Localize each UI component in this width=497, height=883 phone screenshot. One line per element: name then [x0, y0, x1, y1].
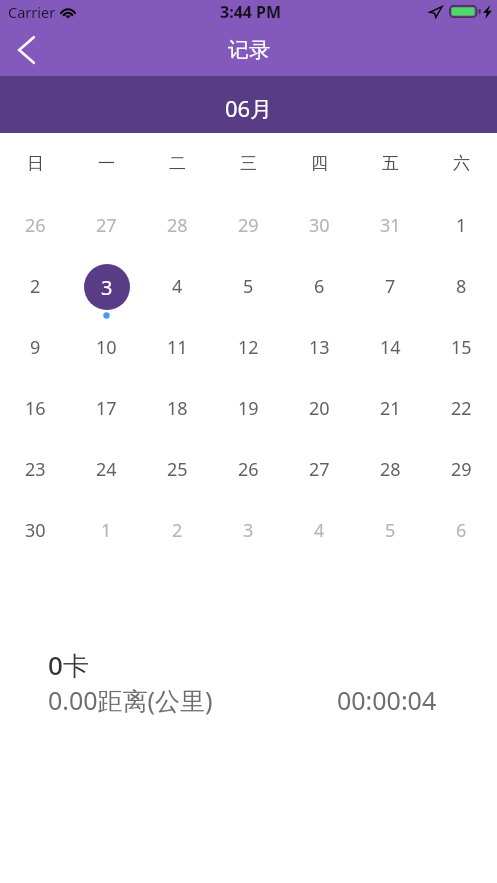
button[interactable]: 4	[284, 500, 355, 561]
staticText: 20	[309, 396, 330, 421]
button[interactable]: 27	[71, 195, 142, 256]
staticText: 3	[243, 518, 254, 543]
button[interactable]: 27	[284, 439, 355, 500]
button[interactable]: 29	[426, 439, 497, 500]
button[interactable]: Back	[0, 24, 52, 76]
staticText: 22	[451, 396, 472, 421]
button[interactable]: 1	[426, 195, 497, 256]
button[interactable]: 9	[0, 317, 71, 378]
staticText: 18	[167, 396, 188, 421]
staticText: 9	[30, 335, 41, 360]
staticText: 6	[314, 274, 325, 299]
button[interactable]: 4	[142, 256, 213, 317]
button[interactable]: 06月	[0, 76, 497, 133]
staticText: 23	[25, 457, 46, 482]
button[interactable]: 3	[71, 256, 142, 317]
button[interactable]: 8	[426, 256, 497, 317]
staticText: 8	[456, 274, 467, 299]
button[interactable]: 12	[213, 317, 284, 378]
button[interactable]: 2	[0, 256, 71, 317]
staticText: 15	[451, 335, 472, 360]
staticText: 7	[385, 274, 396, 299]
button[interactable]: 26	[213, 439, 284, 500]
staticText: 11	[167, 335, 188, 360]
staticText: 00:00:04	[337, 683, 437, 717]
staticText: 17	[96, 396, 117, 421]
button[interactable]: 23	[0, 439, 71, 500]
button[interactable]: 11	[142, 317, 213, 378]
button[interactable]: 30	[0, 500, 71, 561]
button[interactable]: 1	[71, 500, 142, 561]
button[interactable]: 3	[213, 500, 284, 561]
staticText: 0.00距离(公里)	[48, 683, 213, 717]
button[interactable]: 15	[426, 317, 497, 378]
button[interactable]: 5	[355, 500, 426, 561]
button[interactable]: 6	[284, 256, 355, 317]
staticText: 1	[456, 213, 467, 238]
staticText: 28	[167, 213, 188, 238]
staticText: 21	[380, 396, 401, 421]
button[interactable]: 17	[71, 378, 142, 439]
staticText: 5	[385, 518, 396, 543]
button[interactable]: 0卡	[0, 647, 497, 717]
button[interactable]: 28	[142, 195, 213, 256]
staticText: 六	[453, 153, 470, 174]
button[interactable]: 14	[355, 317, 426, 378]
button[interactable]: 20	[284, 378, 355, 439]
staticText: 27	[309, 457, 330, 482]
staticText: 日	[27, 153, 44, 174]
staticText: 29	[451, 457, 472, 482]
staticText: 16	[25, 396, 46, 421]
button[interactable]: 29	[213, 195, 284, 256]
button[interactable]: 31	[355, 195, 426, 256]
staticText: 3:44 PM	[220, 1, 282, 23]
button[interactable]: 16	[0, 378, 71, 439]
staticText: 26	[25, 213, 46, 238]
staticText: 30	[309, 213, 330, 238]
staticText: 06月	[225, 93, 273, 123]
staticText: 12	[238, 335, 259, 360]
button[interactable]: 5	[213, 256, 284, 317]
button[interactable]: 21	[355, 378, 426, 439]
staticText: Carrier	[8, 2, 56, 22]
staticText: 31	[380, 213, 401, 238]
staticText: 三	[240, 153, 257, 174]
button[interactable]: 2	[142, 500, 213, 561]
staticText: 3	[101, 274, 113, 301]
button[interactable]: 7	[355, 256, 426, 317]
button[interactable]: 10	[71, 317, 142, 378]
staticText: 14	[380, 335, 401, 360]
staticText: 二	[169, 153, 186, 174]
staticText: 27	[96, 213, 117, 238]
staticText: 10	[96, 335, 117, 360]
staticText: 25	[167, 457, 188, 482]
staticText: 记录	[228, 37, 270, 63]
button[interactable]: 30	[284, 195, 355, 256]
staticText: 30	[25, 518, 46, 543]
staticText: 24	[96, 457, 117, 482]
button[interactable]: 6	[426, 500, 497, 561]
staticText: 2	[172, 518, 183, 543]
button[interactable]: 22	[426, 378, 497, 439]
button[interactable]: 19	[213, 378, 284, 439]
button[interactable]: 24	[71, 439, 142, 500]
staticText: 1	[101, 518, 112, 543]
staticText: 28	[380, 457, 401, 482]
staticText: 五	[382, 153, 399, 174]
button[interactable]: 26	[0, 195, 71, 256]
staticText: 4	[314, 518, 325, 543]
staticText: 19	[238, 396, 259, 421]
staticText: 26	[238, 457, 259, 482]
staticText: 5	[243, 274, 254, 299]
staticText: 一	[98, 153, 115, 174]
staticText: 6	[456, 518, 467, 543]
button[interactable]: 13	[284, 317, 355, 378]
staticText: 29	[238, 213, 259, 238]
button[interactable]: 18	[142, 378, 213, 439]
staticText: 4	[172, 274, 183, 299]
staticText: 13	[309, 335, 330, 360]
button[interactable]: 25	[142, 439, 213, 500]
button[interactable]: 28	[355, 439, 426, 500]
staticText: 0卡	[48, 647, 89, 683]
staticText: 2	[30, 274, 41, 299]
